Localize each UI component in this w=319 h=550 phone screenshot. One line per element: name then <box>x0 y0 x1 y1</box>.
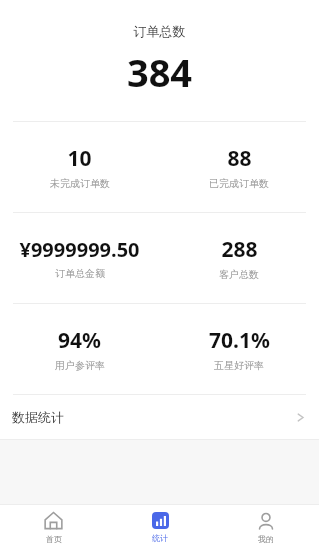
staticText: 首页 <box>46 534 62 544</box>
button[interactable]: 统计 <box>107 505 213 550</box>
staticText: 统计 <box>152 533 168 543</box>
button[interactable]: 首页 <box>0 505 107 550</box>
staticText: 已完成订单数 <box>209 177 269 190</box>
button[interactable]: 94% <box>0 326 159 372</box>
staticText: 288 <box>221 235 258 264</box>
staticText: 94% <box>58 326 101 355</box>
staticText: 384 <box>0 46 319 98</box>
staticText: 客户总数 <box>219 268 259 281</box>
staticText: 88 <box>227 144 252 173</box>
button[interactable]: 70.1% <box>159 326 319 372</box>
staticText: 70.1% <box>209 326 270 355</box>
staticText: 未完成订单数 <box>50 177 110 190</box>
button[interactable]: 数据统计 <box>0 395 319 439</box>
staticText: 10 <box>67 144 92 173</box>
button[interactable]: 10 <box>0 144 159 190</box>
staticText: 数据统计 <box>12 409 64 425</box>
staticText: 订单总数 <box>0 23 319 39</box>
button[interactable]: 我的 <box>213 505 319 550</box>
staticText: 五星好评率 <box>214 359 264 372</box>
button[interactable]: 288 <box>159 235 319 281</box>
staticText: 订单总金额 <box>55 267 105 280</box>
staticText: 用户参评率 <box>55 359 105 372</box>
button[interactable]: ¥9999999.50 <box>0 236 159 280</box>
staticText: ¥9999999.50 <box>19 236 140 263</box>
button[interactable]: 88 <box>159 144 319 190</box>
staticText: 我的 <box>258 534 274 544</box>
